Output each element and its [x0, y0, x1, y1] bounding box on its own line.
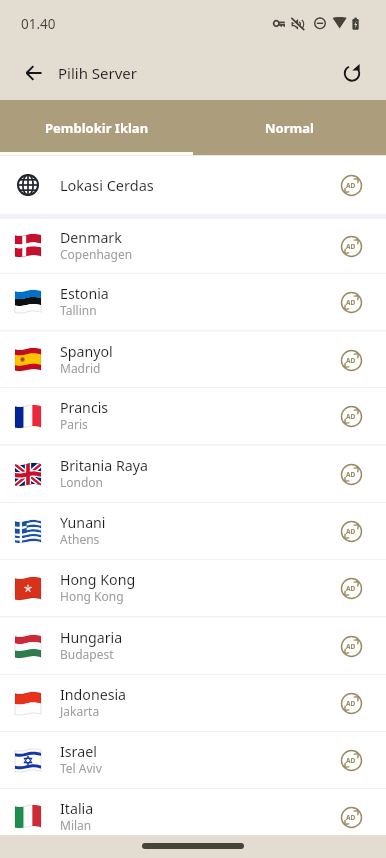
staticText: Estonia — [60, 284, 109, 303]
staticText: Copenhagen — [60, 246, 133, 262]
button[interactable]: Yunani — [0, 503, 386, 559]
button[interactable]: Ad blocker — [338, 289, 364, 315]
button[interactable]: Ad blocker — [338, 804, 364, 830]
staticText: Jakarta — [60, 703, 100, 719]
button[interactable]: Ad blocker — [338, 461, 364, 487]
staticText: Athens — [60, 531, 100, 547]
staticText: Hong Kong — [60, 570, 136, 589]
button[interactable]: Ad blocker — [338, 747, 364, 773]
button[interactable]: Ad blocker — [338, 633, 364, 659]
button[interactable]: Italia — [0, 789, 386, 844]
staticText: AD — [346, 642, 356, 651]
staticText: AD — [346, 756, 356, 765]
staticText: Milan — [60, 817, 92, 833]
button[interactable]: Ad blocker — [338, 518, 364, 544]
staticText: Indonesia — [60, 685, 127, 704]
staticText: AD — [346, 470, 356, 479]
button[interactable]: Back — [14, 53, 54, 93]
staticText: Yunani — [60, 513, 106, 532]
button[interactable]: Ad blocker — [338, 233, 364, 259]
button[interactable]: Estonia — [0, 274, 386, 329]
button[interactable]: Britania Raya — [0, 446, 386, 502]
staticText: AD — [346, 181, 356, 190]
staticText: Lokasi Cerdas — [60, 175, 154, 195]
staticText: 01.40 — [21, 15, 56, 33]
staticText: Britania Raya — [60, 456, 148, 475]
staticText: London — [60, 474, 104, 490]
button[interactable]: Prancis — [0, 388, 386, 444]
button[interactable]: Ad blocker — [338, 690, 364, 716]
staticText: Israel — [60, 742, 97, 761]
staticText: Prancis — [60, 398, 109, 417]
staticText: Tallinn — [60, 302, 97, 318]
staticText: Pilih Server — [58, 63, 138, 83]
button[interactable]: Israel — [0, 732, 386, 788]
staticText: AD — [346, 356, 356, 365]
staticText: AD — [346, 699, 356, 708]
staticText: Denmark — [60, 228, 122, 247]
staticText: Madrid — [60, 360, 101, 376]
staticText: Pemblokir Iklan — [45, 119, 149, 137]
button[interactable]: Refresh — [332, 53, 372, 93]
staticText: AD — [346, 527, 356, 536]
button[interactable]: Hungaria — [0, 618, 386, 674]
button[interactable]: Indonesia — [0, 675, 386, 731]
staticText: Spanyol — [60, 342, 113, 361]
button[interactable]: Pemblokir Iklan — [0, 100, 193, 155]
button[interactable]: Ad blocker — [338, 403, 364, 429]
staticText: Tel Aviv — [60, 760, 102, 776]
button[interactable]: Denmark — [0, 219, 386, 272]
staticText: Paris — [60, 416, 88, 432]
staticText: Budapest — [60, 646, 114, 662]
button[interactable]: Lokasi Cerdas — [0, 156, 386, 214]
button[interactable]: Ad blocker — [338, 172, 364, 198]
button[interactable]: Spanyol — [0, 332, 386, 387]
staticText: AD — [346, 412, 356, 421]
staticText: AD — [346, 242, 356, 251]
staticText: Hungaria — [60, 628, 123, 647]
button[interactable]: Ad blocker — [338, 347, 364, 373]
staticText: Italia — [60, 799, 94, 818]
staticText: AD — [346, 298, 356, 307]
button[interactable]: Normal — [193, 100, 386, 155]
staticText: AD — [346, 584, 356, 593]
button[interactable]: Hong Kong — [0, 560, 386, 616]
staticText: Hong Kong — [60, 588, 124, 604]
staticText: AD — [346, 813, 356, 822]
staticText: Normal — [265, 119, 314, 137]
button[interactable]: Ad blocker — [338, 575, 364, 601]
